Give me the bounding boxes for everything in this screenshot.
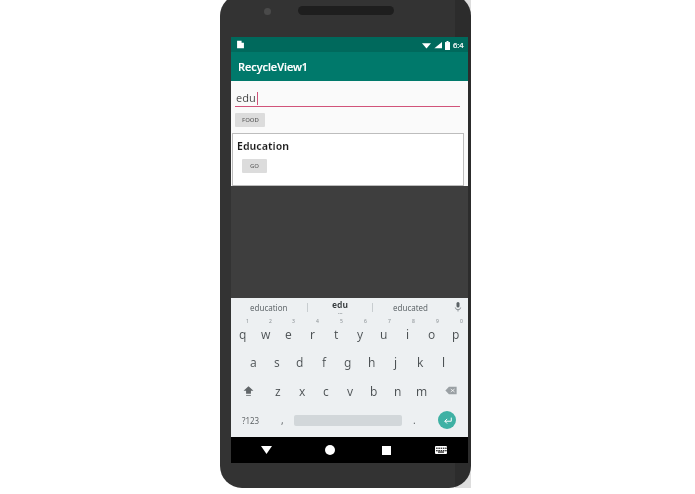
button[interactable]: c [314,376,338,405]
button[interactable]: 0 [444,316,468,347]
staticText: q [239,326,247,342]
button[interactable]: g [336,347,360,376]
button[interactable]: d [288,347,312,376]
button[interactable]: a [242,347,265,376]
button[interactable]: Space [294,413,402,427]
staticText: ••• [338,311,343,316]
button[interactable]: 4 [300,316,324,347]
button[interactable]: edu [308,298,372,316]
staticText: h [368,354,376,370]
staticText: 7 [388,318,391,325]
staticText: r [310,326,315,342]
button[interactable]: 2 [254,316,277,347]
button[interactable]: 6 [348,316,372,347]
staticText: f [322,354,327,370]
staticText: 0 [460,318,463,325]
button[interactable]: Recents [358,437,414,463]
staticText: t [334,326,339,342]
staticText: j [394,354,398,370]
button[interactable]: FOOD [235,113,265,127]
button[interactable]: Enter [426,405,468,435]
button[interactable]: edu [231,81,468,107]
staticText: 6 [364,318,367,325]
button[interactable]: v [338,376,362,405]
button[interactable]: 5 [324,316,348,347]
button[interactable]: ?123 [231,405,270,435]
button[interactable]: 1 [231,316,254,347]
staticText: GO [250,162,260,170]
button[interactable]: x [290,376,314,405]
staticText: s [274,354,280,370]
staticText: education [250,302,288,313]
button[interactable]: z [266,376,290,405]
staticText: i [406,326,410,342]
button[interactable]: k [408,347,432,376]
button[interactable]: s [265,347,288,376]
staticText: p [452,326,460,342]
staticText: , [281,413,284,427]
staticText: e [285,326,292,342]
button[interactable]: educated [373,298,448,316]
button[interactable]: Shift [231,376,266,405]
staticText: 5 [340,318,343,325]
staticText: m [416,383,428,399]
staticText: g [344,354,352,370]
button[interactable]: l [432,347,456,376]
staticText: n [394,383,402,399]
staticText: z [275,383,281,399]
button[interactable]: f [312,347,336,376]
button[interactable]: , [270,405,294,435]
staticText: 3 [292,318,295,325]
staticText: FOOD [242,116,259,124]
button[interactable]: b [362,376,386,405]
button[interactable]: Home [302,437,358,463]
staticText: educated [393,302,429,313]
staticText: x [299,383,306,399]
button[interactable]: 3 [277,316,300,347]
staticText: 8 [412,318,415,325]
staticText: u [380,326,388,342]
button[interactable]: education [231,298,307,316]
button[interactable]: 9 [420,316,444,347]
staticText: . [413,413,416,427]
button[interactable]: Back [231,437,302,463]
button[interactable]: Backspace [434,376,468,405]
staticText: o [428,326,436,342]
button[interactable]: j [384,347,408,376]
button[interactable]: h [360,347,384,376]
staticText: l [442,354,446,370]
button[interactable]: 7 [372,316,396,347]
staticText: w [261,326,271,342]
staticText: 4 [316,318,319,325]
staticText: k [417,354,424,370]
staticText: v [347,383,354,399]
button[interactable]: 8 [396,316,420,347]
staticText: 2 [269,318,272,325]
button[interactable]: . [402,405,426,435]
staticText: 9 [436,318,439,325]
staticText: 6:4 [453,40,464,50]
staticText: RecycleView1 [238,59,309,74]
button[interactable]: m [410,376,434,405]
staticText: ?123 [242,415,260,426]
button[interactable]: GO [242,159,267,173]
staticText: edu [236,90,256,105]
staticText: d [296,354,304,370]
staticText: b [370,383,378,399]
staticText: 1 [246,318,249,325]
staticText: Education [237,139,290,153]
staticText: edu [332,299,348,311]
staticText: a [250,354,257,370]
staticText: c [323,383,329,399]
button[interactable]: Switch keyboard [414,437,468,463]
button[interactable]: n [386,376,410,405]
button[interactable]: Voice input [448,298,468,316]
staticText: y [357,326,364,342]
button[interactable]: Education [232,133,464,186]
